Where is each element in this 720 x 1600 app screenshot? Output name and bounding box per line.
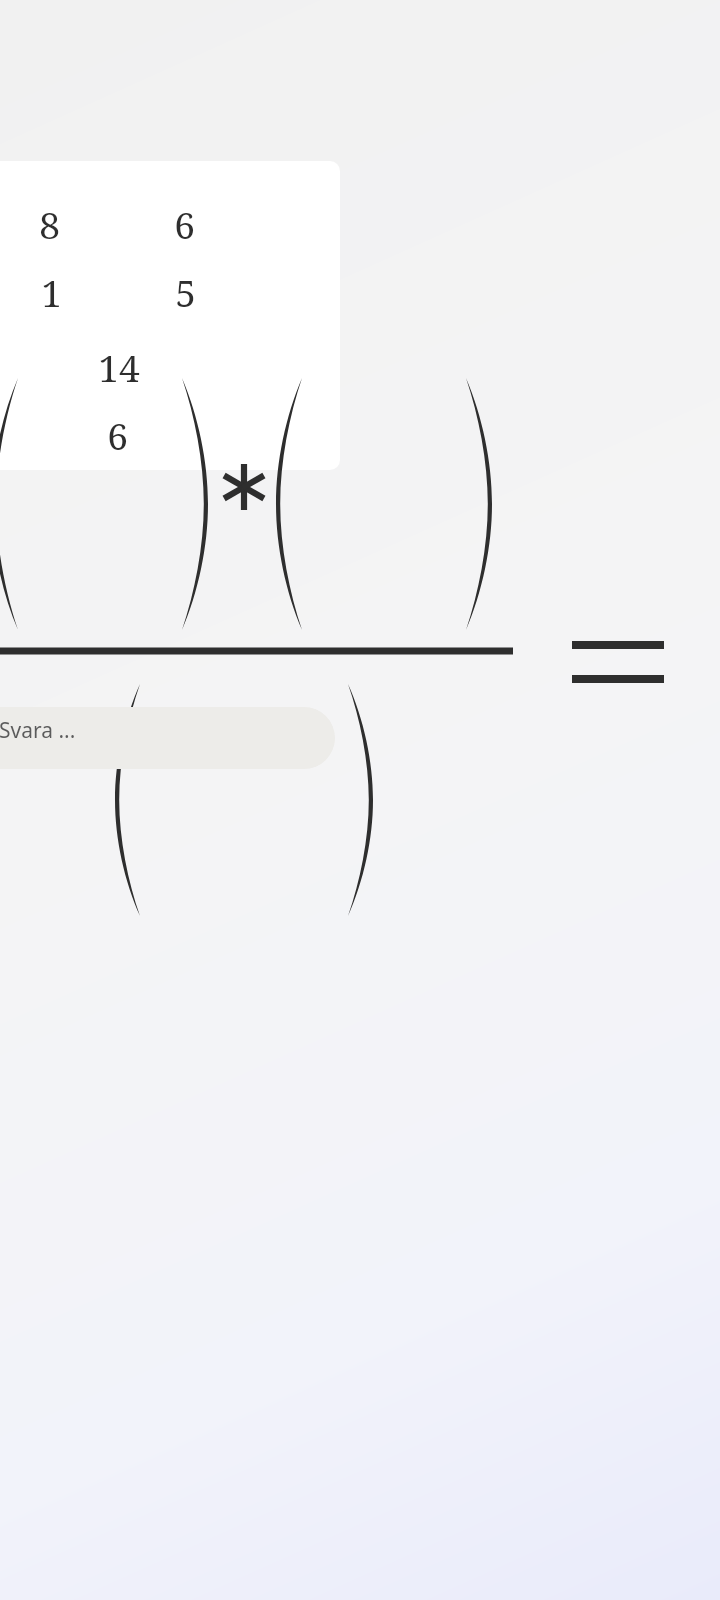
staticText: 5	[175, 267, 196, 317]
button[interactable]: Answer field	[0, 707, 335, 769]
staticText: 1	[41, 267, 62, 317]
staticText: 6	[107, 410, 128, 460]
staticText: 8	[39, 199, 60, 249]
staticText: Svara ...	[0, 716, 76, 745]
staticText: 6	[174, 199, 195, 249]
button[interactable]	[0, 161, 340, 470]
staticText: 14	[98, 342, 140, 392]
